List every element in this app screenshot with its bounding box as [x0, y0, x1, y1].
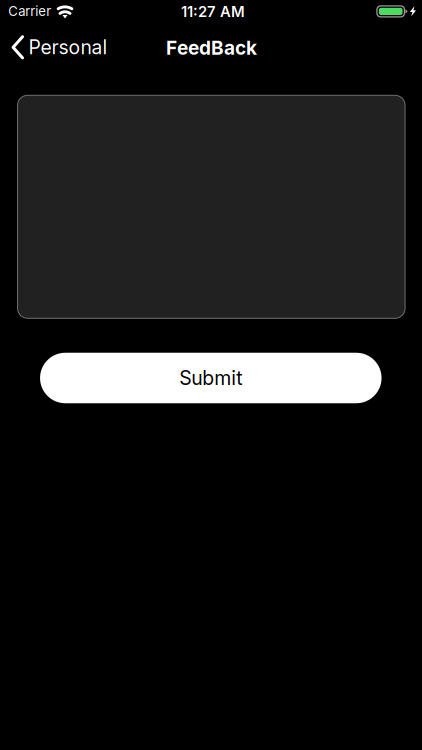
staticText: Personal [28, 36, 107, 59]
staticText: Submit [179, 366, 242, 390]
staticText: FeedBack [166, 36, 257, 59]
staticText: Carrier [8, 3, 51, 19]
button[interactable]: Submit [40, 353, 382, 403]
staticText: 11:27 AM [181, 3, 245, 21]
button[interactable]: Back to Personal [0, 27, 116, 67]
button[interactable]: Feedback text field [18, 95, 405, 318]
